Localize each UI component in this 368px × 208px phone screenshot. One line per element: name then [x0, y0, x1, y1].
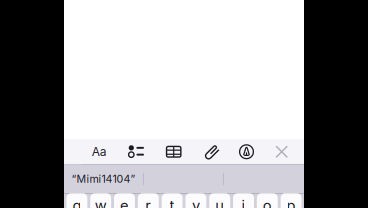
button[interactable]: u — [209, 193, 230, 208]
button[interactable]: Attach file — [192, 139, 229, 164]
button[interactable]: p — [281, 193, 301, 208]
button[interactable]: “Mimi14104” — [64, 164, 143, 193]
button[interactable]: w — [90, 193, 111, 208]
staticText: w — [95, 196, 107, 208]
staticText: Aa — [92, 144, 107, 159]
button[interactable]: Close formatting bar — [264, 139, 299, 164]
staticText: o — [263, 196, 272, 208]
button[interactable]: o — [257, 193, 278, 208]
button[interactable]: Second suggestion — [143, 164, 223, 193]
button[interactable]: y — [185, 193, 206, 208]
button[interactable]: q — [66, 193, 87, 208]
button[interactable]: Text format — [81, 139, 118, 164]
button[interactable]: Checklist — [118, 139, 155, 164]
staticText: t — [170, 196, 175, 208]
staticText: “Mimi14104” — [71, 172, 135, 185]
button[interactable]: e — [114, 193, 135, 208]
staticText: u — [215, 196, 224, 208]
staticText: r — [145, 196, 151, 208]
button[interactable]: i — [233, 193, 254, 208]
staticText: e — [120, 196, 129, 208]
staticText: p — [287, 196, 296, 208]
staticText: q — [72, 196, 81, 208]
button[interactable]: t — [162, 193, 182, 208]
button[interactable]: Third suggestion — [223, 164, 304, 193]
button[interactable]: Markup — [229, 139, 264, 164]
button[interactable]: r — [138, 193, 159, 208]
staticText: i — [241, 196, 245, 208]
staticText: y — [192, 196, 200, 208]
button[interactable]: Table — [155, 139, 192, 164]
